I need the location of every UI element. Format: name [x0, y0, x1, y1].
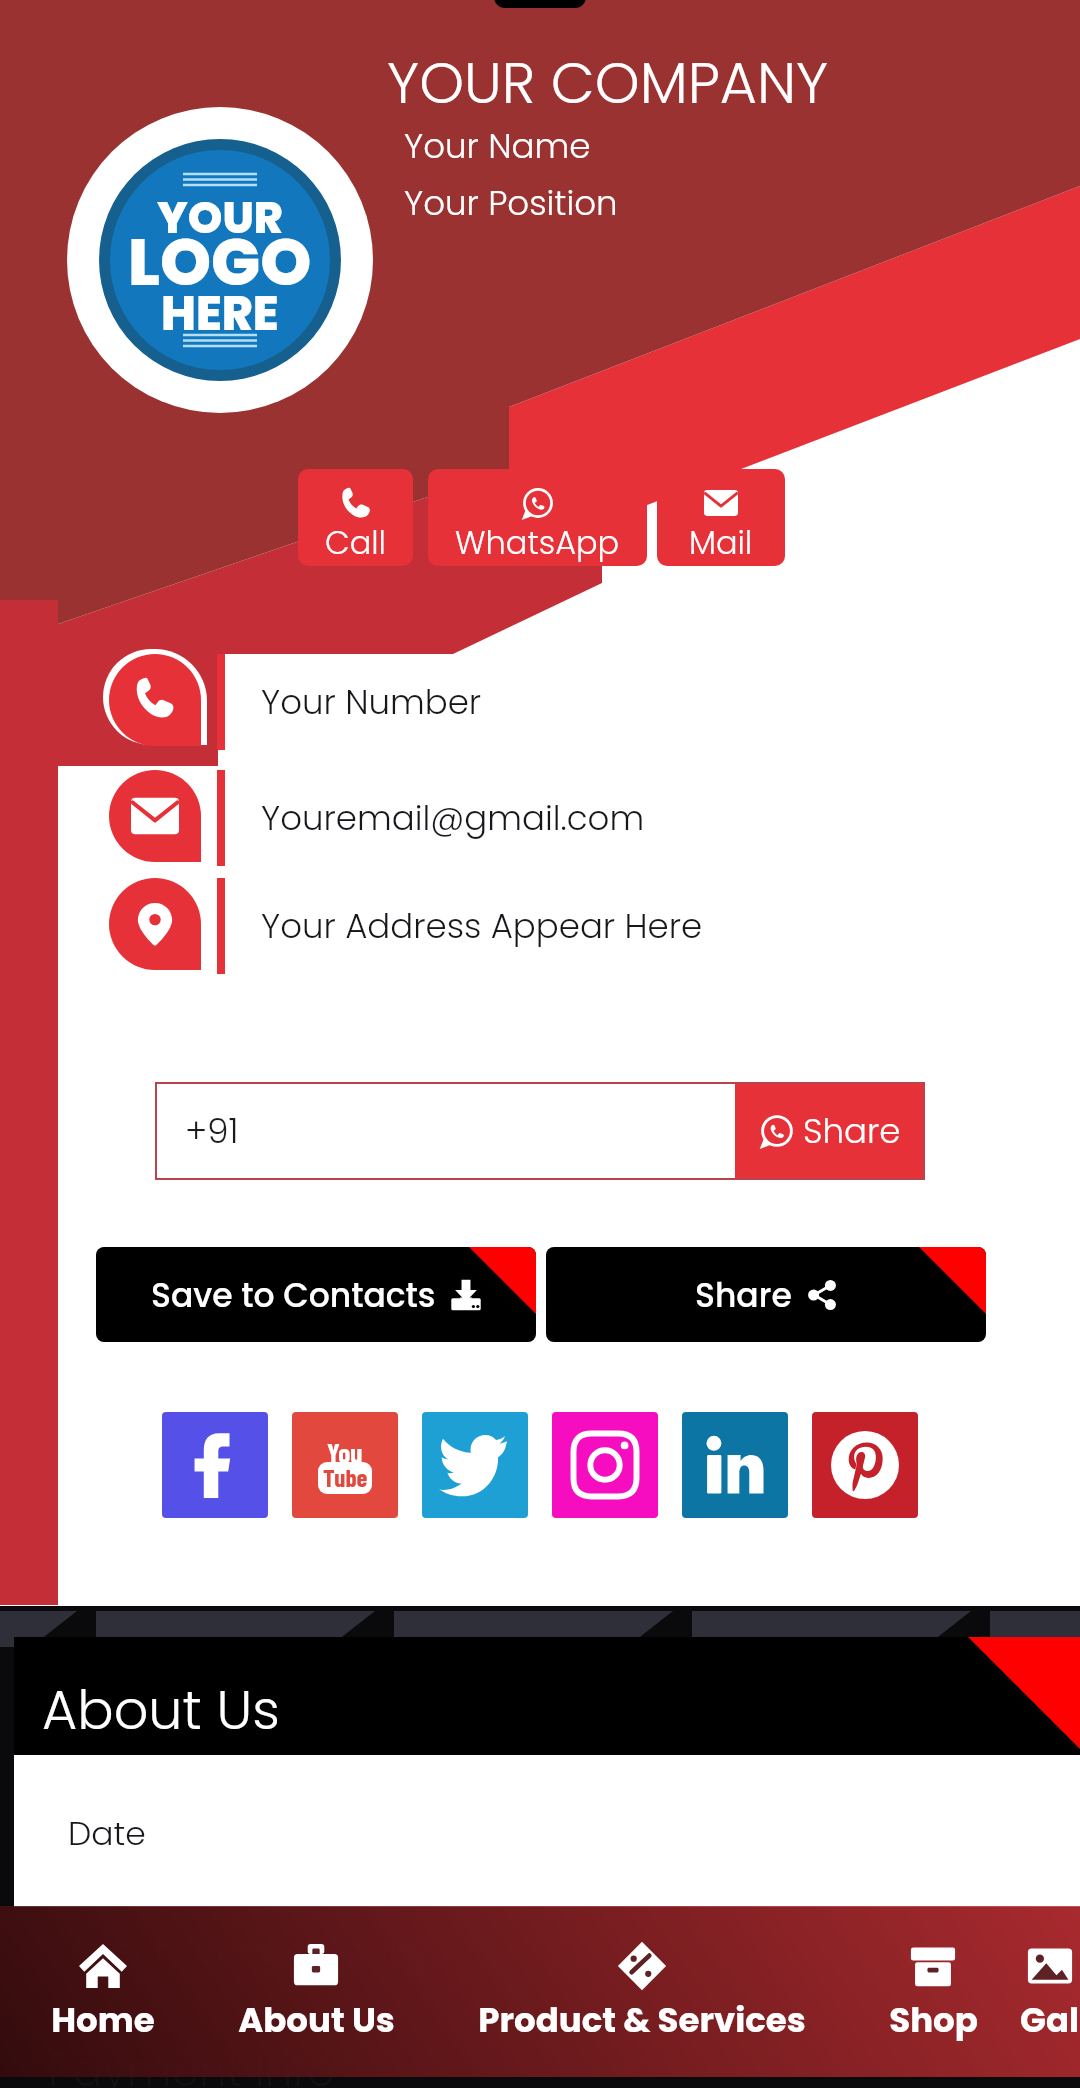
staticText: YOUR COMPANY [387, 43, 829, 123]
staticText: You [327, 1436, 363, 1468]
staticText: Home [51, 1996, 155, 2044]
button[interactable]: About Us [196, 1906, 436, 2077]
button[interactable]: Your Address Appear Here [0, 878, 1080, 974]
button[interactable]: Home [10, 1906, 196, 2077]
staticText: +91 [185, 1107, 239, 1155]
staticText: WhatsApp [455, 520, 620, 565]
button[interactable]: Gallery [1019, 1906, 1080, 2077]
button[interactable]: Share [546, 1247, 986, 1342]
staticText: About Us [42, 1672, 280, 1748]
staticText: Call [325, 520, 386, 565]
button[interactable]: LinkedIn [682, 1412, 788, 1518]
staticText: Share [695, 1272, 792, 1318]
staticText: Product & Services [478, 1996, 806, 2044]
button[interactable]: Mail [657, 469, 785, 566]
staticText: Tube [323, 1465, 368, 1491]
staticText: Date [68, 1810, 146, 1856]
staticText: Your Number [261, 678, 482, 726]
staticText: LOGO [128, 217, 312, 308]
staticText: Your Position [404, 179, 618, 227]
button[interactable]: WhatsApp [428, 469, 647, 566]
button[interactable]: Your Number [0, 654, 1080, 750]
button[interactable]: Twitter [422, 1412, 528, 1518]
staticText: Youremail@gmail.com [261, 794, 645, 842]
staticText: About Us [238, 1996, 395, 2044]
staticText: Shop [889, 1996, 978, 2044]
staticText: Your Address Appear Here [261, 902, 703, 950]
button[interactable]: Facebook [162, 1412, 268, 1518]
staticText: Save to Contacts [151, 1272, 436, 1318]
staticText: Mail [689, 520, 753, 565]
button[interactable]: Shop [847, 1906, 1019, 2077]
button[interactable]: Youremail@gmail.com [0, 770, 1080, 866]
button[interactable]: Product & Services [436, 1906, 847, 2077]
staticText: HERE [161, 281, 279, 347]
staticText: Gallery [1019, 1996, 1080, 2044]
button[interactable]: Pinterest [812, 1412, 918, 1518]
staticText: About Your Company [66, 1928, 429, 1976]
button[interactable]: Share [735, 1082, 925, 1180]
button[interactable]: Instagram [552, 1412, 658, 1518]
staticText: Your Name [404, 122, 591, 170]
button[interactable]: Save to Contacts [96, 1247, 536, 1342]
button[interactable]: YouTube [292, 1412, 398, 1518]
staticText: YOUR [157, 187, 283, 249]
staticText: Share [803, 1107, 901, 1155]
button[interactable]: Call [298, 469, 413, 566]
staticText: Payment Info [48, 2040, 335, 2088]
